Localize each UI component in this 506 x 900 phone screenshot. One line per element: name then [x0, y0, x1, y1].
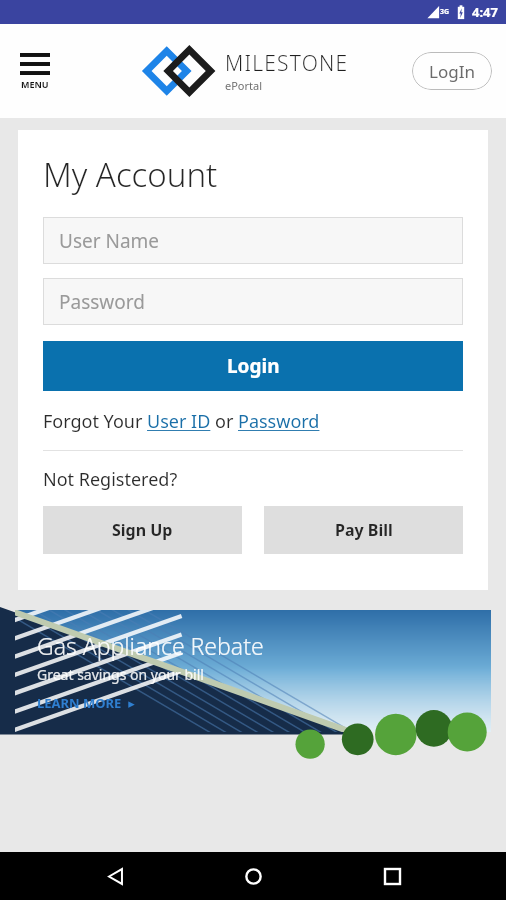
staticText: LogIn — [429, 60, 475, 83]
button[interactable]: Back — [91, 852, 139, 900]
staticText: Password — [59, 289, 145, 315]
button[interactable]: Gas Appliance Rebate — [15, 610, 491, 732]
button[interactable]: Recent apps — [368, 852, 416, 900]
staticText: Sign Up — [112, 519, 173, 541]
staticText: LEARN MORE ▸ — [37, 694, 135, 712]
staticText: MENU — [21, 78, 49, 90]
staticText: MILESTONE — [225, 49, 349, 78]
staticText: 4:47 — [472, 3, 498, 21]
staticText: Login — [227, 353, 280, 379]
staticText: Forgot Your User ID or Password — [43, 409, 320, 434]
button[interactable]: User Name — [43, 217, 463, 264]
staticText: Pay Bill — [335, 519, 393, 541]
staticText: Great savings on your bill — [37, 665, 204, 684]
button[interactable]: Password — [43, 278, 463, 325]
button[interactable]: Login — [43, 341, 463, 391]
button[interactable]: Home — [229, 852, 277, 900]
staticText: 3G — [440, 7, 450, 17]
button[interactable]: Menu — [16, 49, 54, 94]
staticText: My Account — [43, 152, 218, 197]
staticText: User Name — [59, 228, 160, 254]
staticText: ePortal — [225, 78, 263, 93]
button[interactable]: LogIn — [412, 52, 492, 90]
button[interactable]: Pay Bill — [264, 506, 463, 554]
staticText: Not Registered? — [43, 467, 178, 492]
staticText: Gas Appliance Rebate — [37, 630, 264, 661]
button[interactable]: Sign Up — [43, 506, 242, 554]
button[interactable]: Forgot Your User ID or Password — [43, 409, 320, 434]
